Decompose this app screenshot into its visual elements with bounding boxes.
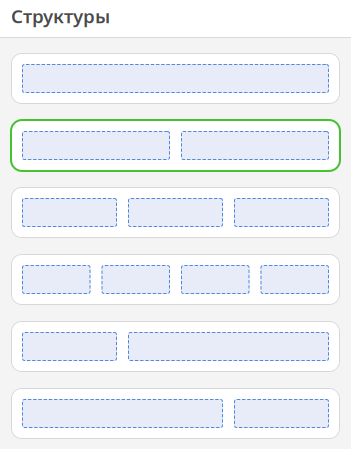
button[interactable]: [10, 387, 341, 440]
button[interactable]: [10, 186, 341, 239]
button[interactable]: [10, 119, 341, 172]
button[interactable]: [10, 52, 341, 105]
staticText: Структуры: [11, 4, 110, 28]
button[interactable]: [10, 253, 341, 306]
button[interactable]: [10, 320, 341, 373]
